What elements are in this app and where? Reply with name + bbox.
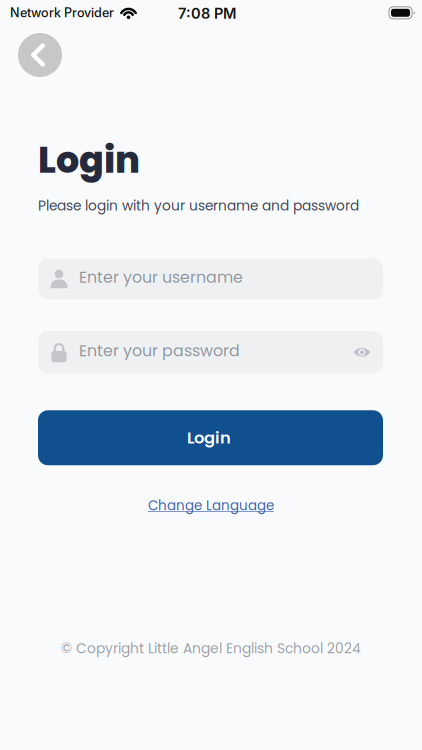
staticText: Network Provider xyxy=(10,5,114,20)
staticText: Change Language xyxy=(148,496,274,515)
button[interactable]: Login xyxy=(38,410,383,465)
staticText: Please login with your username and pass… xyxy=(38,196,359,215)
button[interactable]: Show password xyxy=(353,346,383,358)
staticText: Login xyxy=(38,134,140,186)
staticText: © Copyright Little Angel English School … xyxy=(61,639,361,658)
button[interactable]: Enter your password xyxy=(38,331,383,373)
staticText: Enter your password xyxy=(79,340,240,362)
staticText: 7:08 PM xyxy=(178,5,236,22)
staticText: Enter your username xyxy=(79,266,243,288)
button[interactable]: Back xyxy=(18,33,62,77)
staticText: Login xyxy=(187,426,231,449)
button[interactable]: Change Language xyxy=(148,496,274,515)
button[interactable]: Enter your username xyxy=(38,258,383,299)
